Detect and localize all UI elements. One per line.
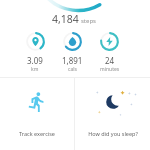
staticText: steps: [81, 17, 96, 25]
staticText: Track exercise: [19, 130, 55, 137]
staticText: cals: [68, 66, 77, 73]
button[interactable]: 1,891: [54, 32, 91, 73]
staticText: 3.09: [27, 55, 43, 66]
button[interactable]: 3.09: [16, 32, 54, 73]
button[interactable]: Track exercise: [0, 78, 74, 150]
button[interactable]: 24: [91, 32, 128, 73]
staticText: 24: [105, 55, 115, 66]
staticText: minutes: [100, 66, 120, 73]
staticText: 4,184: [52, 12, 79, 26]
staticText: km: [31, 66, 39, 73]
staticText: 1,891: [62, 55, 83, 66]
button[interactable]: How did you sleep?: [75, 78, 150, 150]
staticText: How did you sleep?: [88, 130, 138, 137]
